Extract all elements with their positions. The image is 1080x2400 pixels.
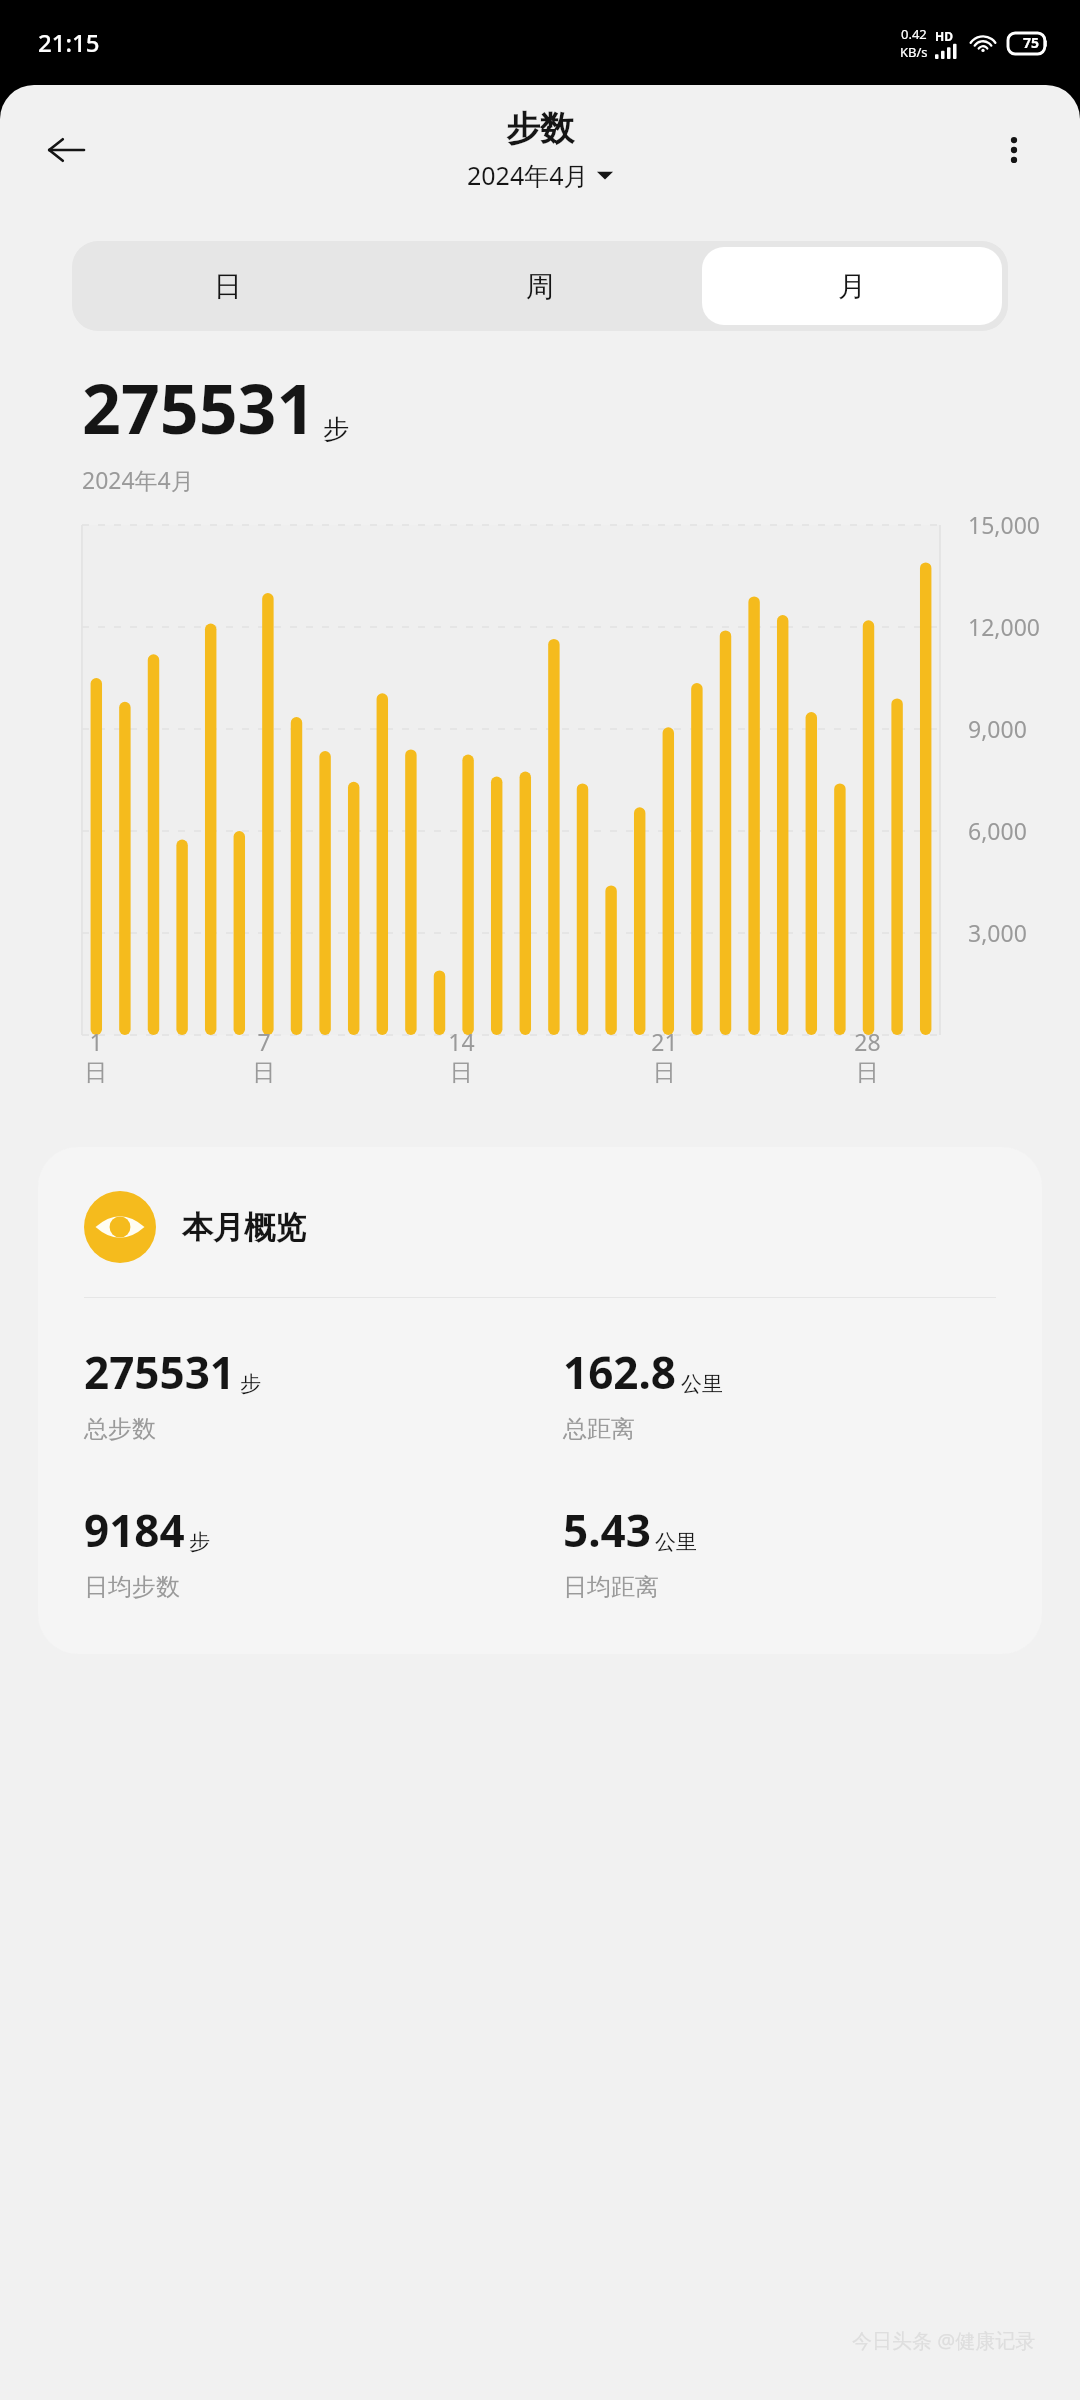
staticText: 1日 <box>82 1026 110 1087</box>
staticText: 日均步数 <box>84 1572 180 1602</box>
staticText: 3,000 <box>968 917 1027 948</box>
button[interactable]: 日 <box>78 247 378 325</box>
staticText: 步 <box>323 413 349 446</box>
staticText: 21:15 <box>38 26 100 59</box>
staticText: 75 <box>1023 33 1040 52</box>
staticText: 21日 <box>650 1026 679 1087</box>
staticText: 今日头条 @健康记录 <box>852 2327 1036 2354</box>
staticText: 步数 <box>506 107 574 150</box>
staticText: 275531 <box>82 361 316 454</box>
staticText: 7日 <box>250 1026 278 1087</box>
staticText: 9,000 <box>968 713 1027 744</box>
staticText: 周 <box>526 269 554 304</box>
staticText: 0.42 <box>901 25 927 43</box>
staticText: 15,000 <box>968 509 1040 540</box>
staticText: 步 <box>189 1529 210 1555</box>
staticText: 2024年4月 <box>467 158 589 192</box>
button[interactable]: 月 <box>702 247 1002 325</box>
staticText: 日均距离 <box>563 1572 659 1602</box>
staticText: 162.8 <box>563 1342 677 1402</box>
button[interactable]: Back <box>30 114 102 186</box>
staticText: 总距离 <box>563 1414 635 1444</box>
button[interactable]: 2024年4月 <box>461 156 619 194</box>
staticText: 月 <box>838 269 866 304</box>
button[interactable]: More options <box>982 118 1046 182</box>
staticText: 总步数 <box>84 1414 156 1444</box>
staticText: 公里 <box>681 1371 723 1397</box>
staticText: 12,000 <box>968 611 1040 642</box>
staticText: 275531 <box>84 1342 236 1402</box>
button[interactable]: 周 <box>390 247 690 325</box>
button[interactable]: 本月概览 <box>38 1147 1042 1654</box>
staticText: 5.43 <box>563 1500 651 1560</box>
staticText: 2024年4月 <box>82 464 194 495</box>
staticText: 公里 <box>655 1529 697 1555</box>
staticText: KB/s <box>900 43 928 61</box>
staticText: 14日 <box>447 1026 476 1087</box>
staticText: 9184 <box>84 1500 185 1560</box>
staticText: HD <box>935 28 953 44</box>
staticText: 本月概览 <box>182 1208 306 1247</box>
staticText: 28日 <box>853 1026 882 1087</box>
staticText: 步 <box>240 1371 261 1397</box>
staticText: 日 <box>214 269 242 304</box>
staticText: 6,000 <box>968 815 1027 846</box>
